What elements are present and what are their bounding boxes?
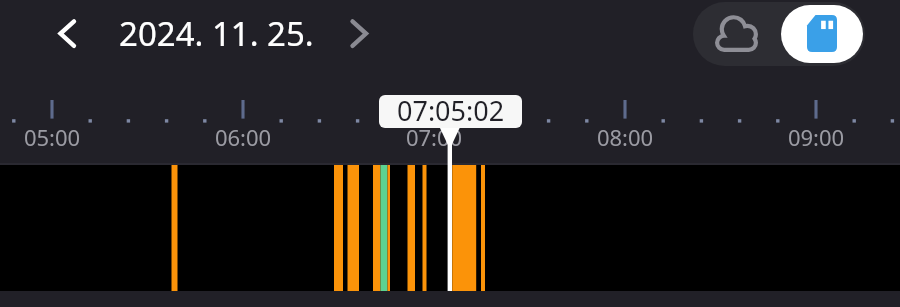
- button[interactable]: Next day: [346, 14, 378, 56]
- button[interactable]: 07:05:02: [379, 95, 522, 128]
- button[interactable]: SD card storage: [781, 5, 863, 63]
- staticText: 05:00: [0, 122, 112, 152]
- staticText: 07:00: [374, 122, 494, 152]
- staticText: 07:05:02: [397, 95, 505, 125]
- staticText: 09:00: [756, 122, 876, 152]
- button[interactable]: Previous day: [44, 14, 76, 56]
- button[interactable]: 2024. 11. 25.: [119, 11, 314, 56]
- button[interactable]: Cloud storage: [693, 2, 781, 66]
- staticText: 06:00: [183, 122, 303, 152]
- staticText: 08:00: [565, 122, 685, 152]
- button[interactable]: Recording timeline: [0, 165, 900, 291]
